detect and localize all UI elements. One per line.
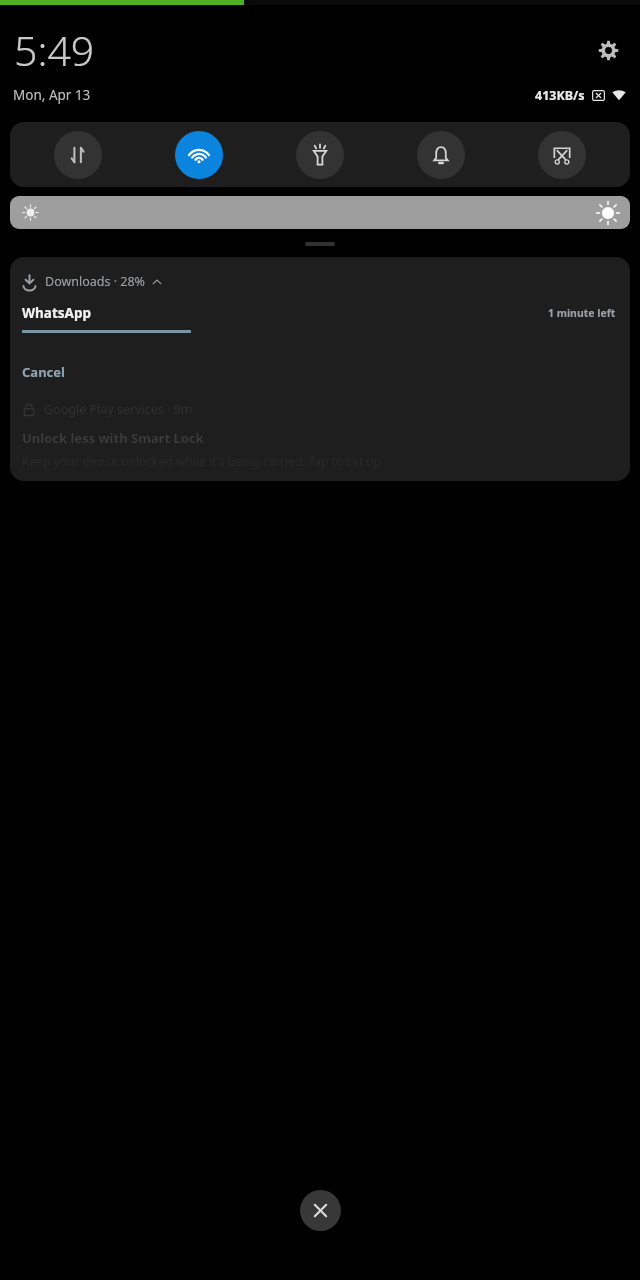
staticText: Google Play services · 9m (44, 401, 193, 418)
staticText: Downloads · 28% (45, 273, 146, 290)
button[interactable]: Close (300, 1190, 341, 1231)
staticText: 413KB/s (535, 87, 585, 104)
button[interactable]: Google Play services · 9m (10, 401, 630, 469)
button[interactable]: Cancel (22, 363, 65, 381)
staticText: 1 minute left (548, 306, 616, 320)
staticText: Keep your device unlocked while it's bei… (22, 453, 382, 469)
button[interactable]: Wi-Fi (175, 131, 223, 179)
staticText: Cancel (22, 363, 65, 381)
staticText: Mon, Apr 13 (13, 86, 91, 104)
button[interactable]: Brightness (10, 196, 630, 229)
button[interactable]: Downloads · 28% (10, 257, 630, 381)
button[interactable]: Do not disturb (417, 131, 465, 179)
button[interactable]: Flashlight (296, 131, 344, 179)
staticText: WhatsApp (22, 304, 91, 322)
staticText: 5:49 (14, 22, 95, 78)
button[interactable]: Screenshot (538, 131, 586, 179)
button[interactable]: Mobile data (54, 131, 102, 179)
staticText: Unlock less with Smart Lock (22, 429, 204, 447)
button[interactable]: Settings (590, 32, 626, 68)
